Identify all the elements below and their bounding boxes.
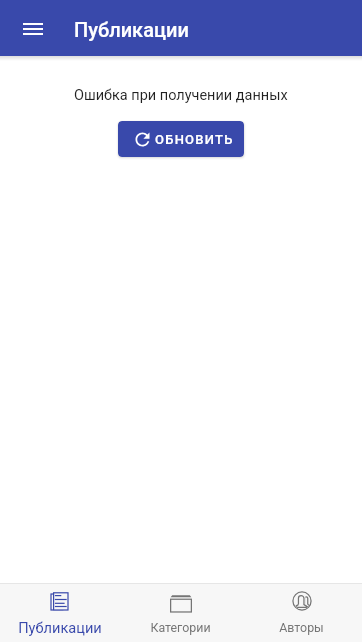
staticText: Авторы [279,620,324,635]
button[interactable]: Open navigation menu [9,4,57,52]
staticText: Публикации [74,18,189,41]
button[interactable]: ОБНОВИТЬ [118,121,244,157]
button[interactable]: Категории [120,584,241,642]
staticText: Публикации [18,619,102,636]
staticText: Категории [150,620,211,635]
button[interactable]: Публикации [0,584,120,642]
staticText: Ошибка при получении данных [74,87,288,104]
staticText: ОБНОВИТЬ [155,132,234,147]
button[interactable]: Авторы [241,584,362,642]
